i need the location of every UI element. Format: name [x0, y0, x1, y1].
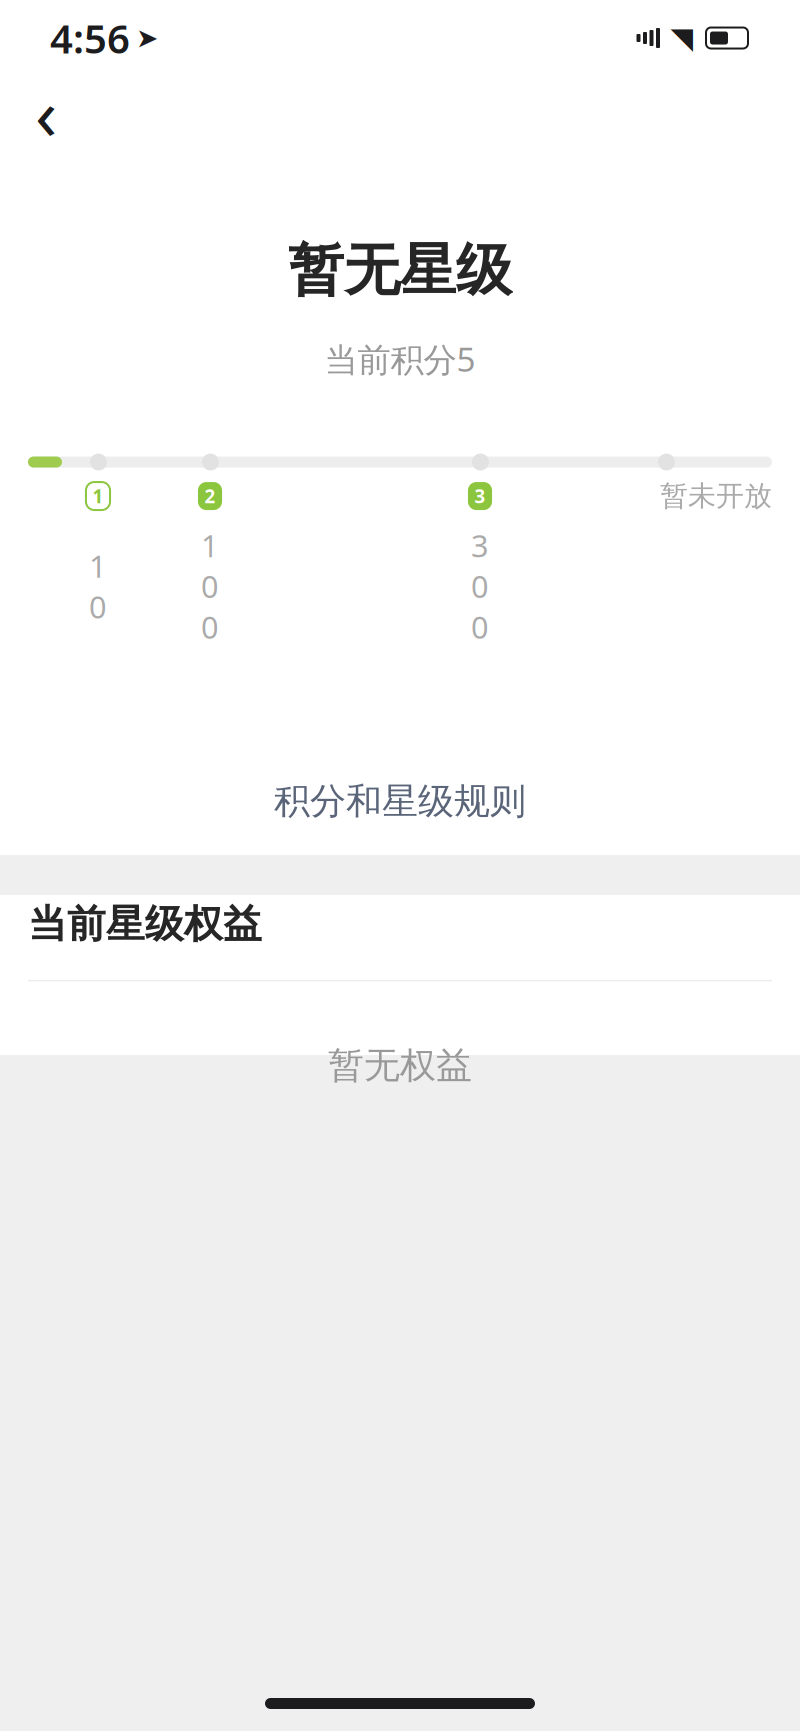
staticText: 当前星级权益: [28, 900, 262, 948]
staticText: 2: [204, 484, 215, 508]
staticText: 暂未开放: [660, 479, 772, 513]
staticText: 暂无星级: [288, 236, 512, 305]
staticText: 4:56: [50, 11, 130, 64]
button[interactable]: Back: [14, 80, 78, 144]
staticText: ➤: [136, 23, 158, 53]
staticText: 当前积分5: [324, 337, 475, 381]
staticText: ‹: [35, 64, 57, 160]
staticText: 3: [474, 484, 485, 508]
staticText: 100: [201, 525, 219, 647]
staticText: 300: [471, 525, 489, 647]
staticText: 暂无权益: [328, 1043, 472, 1088]
staticText: 1: [92, 484, 103, 508]
staticText: ◥: [670, 21, 693, 55]
staticText: 10: [89, 545, 107, 627]
button[interactable]: 积分和星级规则: [250, 765, 550, 837]
staticText: 积分和星级规则: [274, 779, 526, 823]
